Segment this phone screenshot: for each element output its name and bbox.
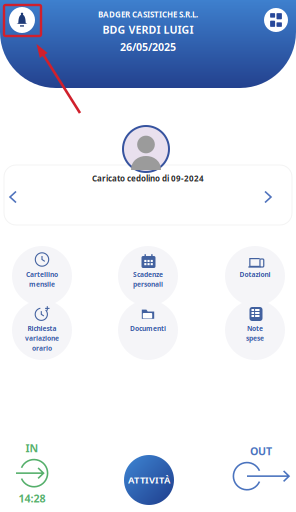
staticText: variazione [25,334,59,343]
staticText: IN [25,441,38,455]
staticText: OUT [250,444,272,458]
button[interactable]: Richiesta [2,300,82,360]
button[interactable]: Note [215,300,295,360]
staticText: 14:28 [18,491,45,505]
button[interactable]: Scadenze [108,246,188,306]
staticText: 26/05/2025 [120,40,176,54]
button[interactable]: Notifiche [9,7,35,33]
staticText: spese [246,334,264,343]
staticText: Caricato cedolino di 09-2024 [92,173,204,184]
button[interactable]: Cartellino [2,246,82,306]
staticText: ATTIVITÀ [128,474,170,486]
staticText: Cartellino [26,270,58,279]
staticText: Documenti [130,324,166,333]
staticText: mensile [29,280,55,289]
staticText: BADGER CASISTICHE S.R.L. [98,9,198,20]
staticText: personali [133,280,163,289]
staticText: Scadenze [133,270,163,279]
staticText: Richiesta [27,324,56,333]
button[interactable]: IN [6,441,58,505]
staticText: BDG VERDI LUIGI [102,23,193,37]
button[interactable]: Dotazioni [215,246,295,306]
button[interactable]: Dashboard [264,8,288,32]
button[interactable]: ATTIVITÀ [124,455,174,505]
button[interactable]: Successivo [255,182,281,212]
staticText: Note [247,324,263,333]
staticText: orario [32,344,52,353]
staticText: Dotazioni [239,270,270,279]
button[interactable]: Precedente [0,182,26,212]
button[interactable]: Documenti [108,300,188,360]
button[interactable]: OUT [232,444,290,491]
